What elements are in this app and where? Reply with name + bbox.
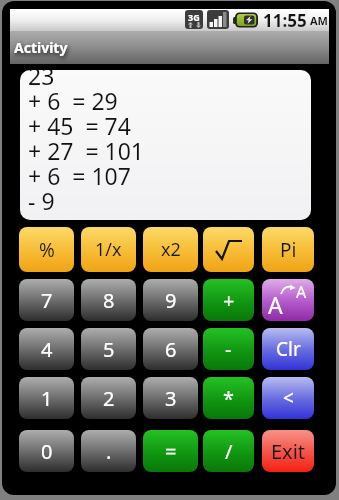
button[interactable] — [203, 227, 254, 272]
staticText: A — [296, 281, 307, 303]
button[interactable]: 1/x — [81, 227, 136, 272]
staticText: + 6 = 107 — [28, 160, 131, 185]
button[interactable]: Exit — [262, 430, 314, 472]
staticText: - 9 — [28, 185, 55, 210]
staticText: + 6 = 29 — [28, 85, 118, 110]
button[interactable]: Pi — [262, 227, 314, 272]
staticText: 4 — [41, 336, 53, 363]
button[interactable]: A — [262, 279, 314, 321]
staticText: Activity — [14, 38, 68, 57]
staticText: = — [165, 438, 177, 465]
staticText: 9 — [165, 287, 177, 314]
button[interactable]: % — [19, 227, 74, 272]
button[interactable]: 9 — [143, 279, 198, 321]
staticText: Exit — [271, 438, 306, 465]
button[interactable]: x2 — [143, 227, 198, 272]
staticText: . — [106, 438, 112, 465]
staticText: % — [39, 237, 55, 263]
button[interactable]: 2 — [81, 377, 136, 419]
button[interactable]: * — [203, 377, 254, 419]
staticText: + 45 = 74 — [28, 110, 131, 135]
staticText: 2 — [103, 385, 115, 412]
staticText: < — [283, 385, 294, 411]
button[interactable]: / — [203, 430, 254, 472]
staticText: + — [223, 287, 235, 314]
staticText: Pi — [280, 237, 297, 263]
staticText: 11:55 — [263, 9, 307, 31]
button[interactable]: Clr — [262, 328, 314, 370]
button[interactable]: 7 — [19, 279, 74, 321]
button[interactable]: 5 — [81, 328, 136, 370]
button[interactable]: + — [203, 279, 254, 321]
staticText: 23 — [28, 70, 55, 85]
button[interactable]: 0 — [19, 430, 74, 472]
staticText: * — [223, 385, 235, 412]
staticText: Clr — [276, 336, 301, 362]
button[interactable]: = — [143, 430, 198, 472]
button[interactable]: - — [203, 328, 254, 370]
staticText: 3 — [165, 385, 177, 412]
staticText: 1 — [41, 385, 53, 412]
staticText: + 27 = 101 — [28, 135, 145, 160]
staticText: 5 — [103, 336, 115, 363]
button[interactable]: 8 — [81, 279, 136, 321]
staticText: x2 — [161, 237, 181, 262]
button[interactable]: 1 — [19, 377, 74, 419]
staticText: 1/x — [95, 237, 122, 262]
staticText: 8 — [103, 287, 115, 314]
staticText: 6 — [165, 336, 177, 363]
staticText: 0 — [41, 438, 53, 465]
button[interactable]: 4 — [19, 328, 74, 370]
staticText: / — [225, 438, 233, 465]
button[interactable]: < — [262, 377, 314, 419]
staticText: - — [225, 336, 232, 363]
button[interactable]: . — [81, 430, 136, 472]
staticText: 3G — [188, 11, 200, 23]
staticText: A — [268, 289, 283, 320]
staticText: 7 — [41, 287, 53, 314]
button[interactable]: 3 — [143, 377, 198, 419]
staticText: AM — [310, 13, 328, 28]
button[interactable]: 6 — [143, 328, 198, 370]
